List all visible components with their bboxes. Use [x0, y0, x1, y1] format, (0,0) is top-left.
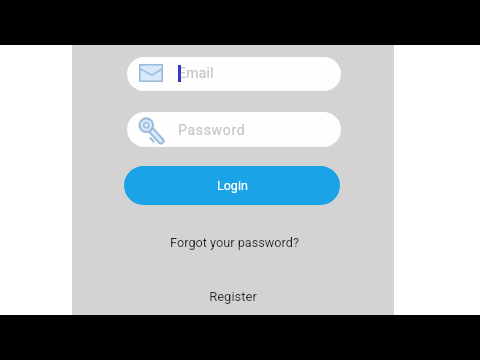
button[interactable]: Password [127, 112, 341, 147]
button[interactable]: Forgot your password? [154, 232, 314, 252]
button[interactable]: Register [183, 286, 283, 306]
staticText: Login [217, 178, 248, 193]
staticText: Password [178, 122, 246, 138]
button[interactable]: Email [127, 57, 341, 91]
other: Email [139, 64, 163, 82]
staticText: Email [178, 65, 214, 81]
staticText: Forgot your password? [170, 235, 299, 250]
button[interactable]: Login [124, 166, 340, 205]
other: Password [138, 117, 164, 143]
staticText: Register [209, 289, 257, 304]
